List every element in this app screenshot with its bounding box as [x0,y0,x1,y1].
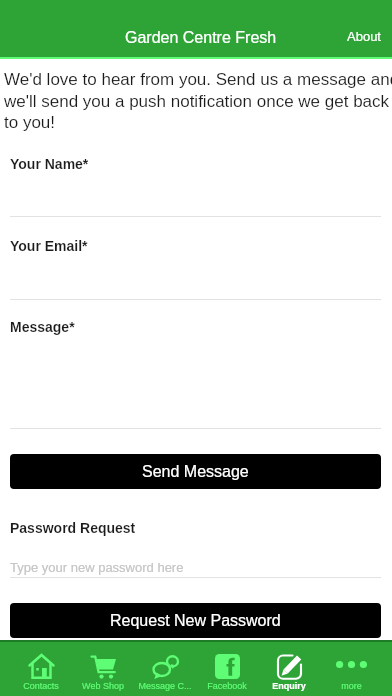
staticText: Your Name* [10,156,89,172]
staticText: Request New Password [110,612,281,630]
staticText: Send Message [142,463,249,481]
other: Web Shop [91,654,116,679]
other: Message Centre [153,654,178,679]
staticText: Garden Centre Fresh [125,29,277,47]
button[interactable]: Enquiry [258,640,320,696]
staticText: We'd love to hear from you. Send us a me… [4,70,392,132]
staticText: Message C... [138,681,192,691]
button[interactable]: Web Shop [72,640,134,696]
button[interactable]: Facebook [196,640,258,696]
button[interactable]: About [338,22,390,51]
staticText: Your Email* [10,238,88,254]
staticText: About [347,29,381,44]
button[interactable]: Contacts [10,640,72,696]
staticText: Message* [10,319,75,335]
other: Contacts [29,654,54,679]
staticText: Facebook [207,681,247,691]
button[interactable]: More [320,640,382,696]
other: Enquiry [277,654,302,679]
button[interactable]: Send Message [10,454,381,489]
staticText: Contacts [23,681,59,691]
staticText: Web Shop [82,681,124,691]
other: Facebook [215,654,240,679]
staticText: Password Request [10,520,136,536]
staticText: Type your new password here [10,560,184,575]
button[interactable]: Message Centre [134,640,196,696]
button[interactable]: Request New Password [10,603,381,638]
staticText: Enquiry [272,681,306,691]
other: More [336,654,367,679]
staticText: more [341,681,362,691]
